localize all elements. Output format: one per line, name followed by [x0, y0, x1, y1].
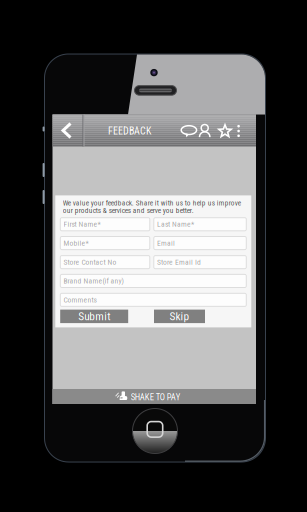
staticText: Store Contact No — [63, 258, 116, 267]
staticText: Brand Name(if any) — [63, 276, 123, 285]
staticText: our products & services and serve you be… — [63, 206, 194, 215]
staticText: Skip — [169, 310, 189, 323]
staticText: First Name* — [63, 220, 100, 229]
button[interactable]: Submit — [60, 310, 128, 323]
staticText: SHAKE TO PAY — [131, 392, 181, 402]
button[interactable]: More options — [235, 122, 243, 139]
staticText: Last Name* — [157, 220, 194, 229]
staticText: Store Email Id — [157, 258, 201, 267]
staticText: We value your feedback. Share it with us… — [63, 199, 241, 207]
button[interactable]: Skip — [154, 310, 205, 323]
button[interactable]: Messages — [178, 122, 199, 139]
button[interactable]: Favorites — [216, 122, 233, 139]
staticText: Comments — [63, 295, 96, 304]
staticText: Submit — [78, 310, 110, 323]
staticText: Email — [157, 239, 175, 247]
button[interactable]: Back — [52, 114, 82, 146]
staticText: FEEDBACK — [108, 125, 151, 137]
button[interactable]: Profile — [197, 122, 213, 139]
staticText: Mobile* — [63, 239, 88, 247]
